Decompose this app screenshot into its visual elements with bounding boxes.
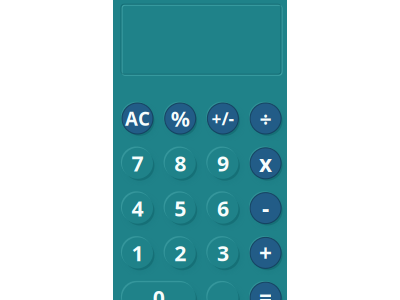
button[interactable]: AC	[121, 102, 154, 135]
button[interactable]: %	[164, 102, 197, 135]
button[interactable]: 2	[164, 236, 197, 269]
staticText: 0	[153, 283, 165, 300]
button[interactable]: -	[249, 192, 282, 225]
button[interactable]: 3	[206, 236, 239, 269]
button[interactable]: 6	[206, 192, 239, 225]
staticText: =	[259, 283, 272, 300]
button[interactable]: +/-	[206, 102, 239, 135]
button[interactable]: 1	[121, 236, 154, 269]
button[interactable]: 7	[121, 147, 154, 180]
staticText: 1	[131, 239, 143, 267]
button[interactable]: 9	[206, 147, 239, 180]
button[interactable]: 5	[164, 192, 197, 225]
staticText: 3	[217, 239, 229, 267]
staticText: AC	[125, 106, 150, 131]
button[interactable]: x	[249, 147, 282, 180]
staticText: 2	[174, 239, 186, 267]
button[interactable]: =	[249, 281, 282, 300]
staticText: -	[262, 193, 269, 223]
staticText: 9	[217, 149, 229, 177]
button[interactable]: ÷	[249, 102, 282, 135]
staticText: +	[259, 238, 272, 268]
staticText: ÷	[260, 104, 272, 133]
button[interactable]: 0	[121, 281, 197, 300]
staticText: 7	[131, 149, 143, 177]
staticText: 4	[131, 194, 143, 222]
staticText: 6	[217, 194, 229, 222]
button[interactable]: 8	[164, 147, 197, 180]
button[interactable]: 4	[121, 192, 154, 225]
staticText: 5	[174, 194, 186, 222]
button[interactable]: +	[249, 236, 282, 269]
button[interactable]: .	[206, 281, 239, 300]
staticText: +/-	[211, 107, 234, 130]
staticText: 8	[174, 149, 186, 177]
staticText: x	[259, 148, 272, 178]
staticText: %	[171, 104, 190, 133]
